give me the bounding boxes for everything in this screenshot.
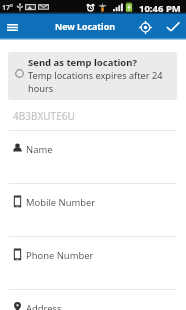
staticText: New Location	[55, 21, 115, 33]
button[interactable]: My location	[132, 14, 159, 40]
staticText: Send as temp location?	[28, 56, 137, 69]
button[interactable]: Address	[0, 290, 186, 310]
button[interactable]: Navigation menu	[0, 14, 25, 40]
staticText: 4B3BXUTE6U	[13, 109, 75, 123]
button[interactable]: Send as temp location?	[8, 52, 177, 100]
staticText: 10:46 PM	[139, 2, 181, 15]
staticText: Name	[26, 143, 53, 156]
button[interactable]: Save	[159, 14, 186, 40]
staticText: Address	[26, 302, 62, 310]
staticText: Temp locations expires after 24 hours	[28, 69, 176, 95]
button[interactable]: Name	[0, 131, 186, 183]
staticText: 17°	[2, 3, 13, 13]
staticText: Mobile Number	[26, 196, 96, 209]
button[interactable]: Phone Number	[0, 237, 186, 289]
staticText: Phone Number	[26, 249, 94, 262]
button[interactable]: Mobile Number	[0, 184, 186, 236]
